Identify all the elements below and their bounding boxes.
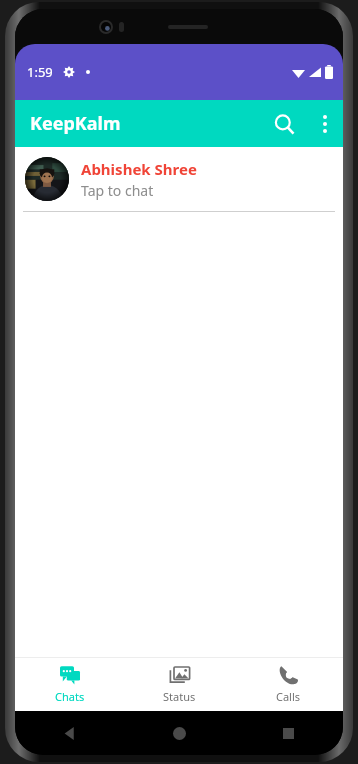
staticText: KeepKalm [30, 111, 121, 136]
button[interactable]: Back [15, 711, 125, 755]
button[interactable]: Recent apps [234, 711, 343, 755]
staticText: Abhishek Shree [81, 159, 197, 179]
button[interactable]: Calls [234, 658, 343, 711]
staticText: Tap to chat [81, 181, 154, 200]
button[interactable]: Home [125, 711, 234, 755]
button[interactable]: Status [125, 658, 234, 711]
staticText: Chats [55, 689, 85, 704]
button[interactable]: Search [261, 101, 307, 147]
staticText: 1:59 [27, 63, 53, 81]
button[interactable]: More options [307, 101, 343, 147]
staticText: Calls [276, 689, 301, 704]
staticText: Status [163, 689, 196, 704]
button[interactable]: Chats [15, 658, 125, 711]
button[interactable]: Abhishek Shree [15, 147, 343, 211]
